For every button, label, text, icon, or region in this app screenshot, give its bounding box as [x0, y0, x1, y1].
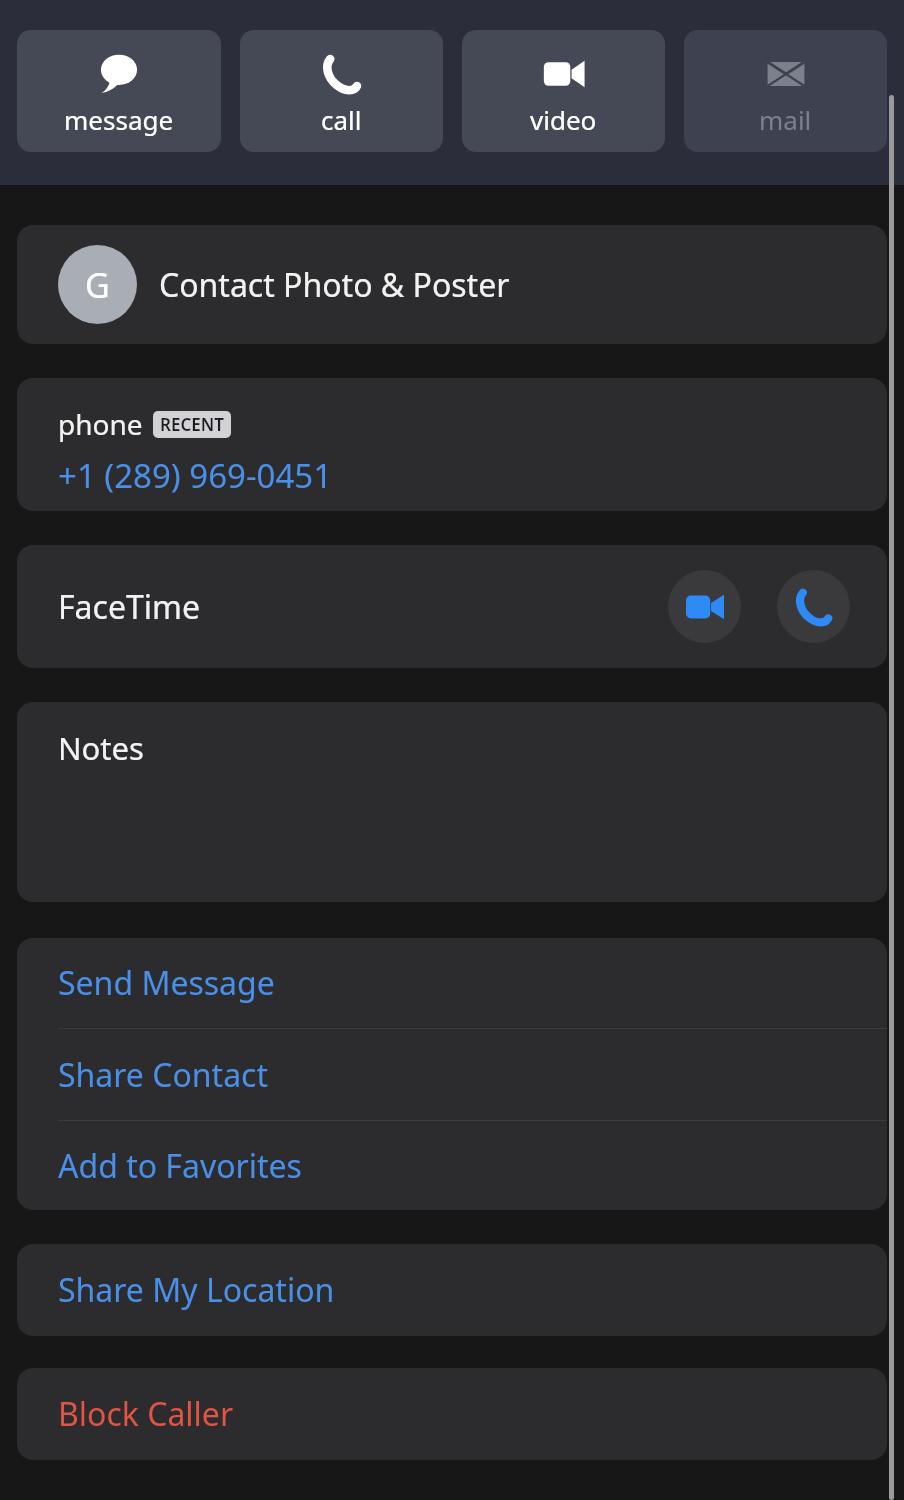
- staticText: +1 (289) 969-0451: [58, 453, 333, 498]
- staticText: G: [85, 262, 110, 308]
- staticText: Add to Favorites: [58, 1144, 302, 1188]
- button[interactable]: mail: [684, 30, 887, 152]
- staticText: message: [64, 102, 174, 137]
- button[interactable]: Block Caller: [17, 1368, 887, 1460]
- button[interactable]: Share My Location: [17, 1244, 887, 1336]
- staticText: Share Contact: [58, 1053, 269, 1097]
- staticText: Send Message: [58, 961, 275, 1005]
- button[interactable]: Add to Favorites: [17, 1121, 887, 1210]
- button[interactable]: message: [17, 30, 221, 152]
- button[interactable]: Share Contact: [17, 1029, 887, 1120]
- staticText: Notes: [58, 727, 144, 769]
- button[interactable]: FaceTime audio: [777, 570, 850, 643]
- staticText: call: [321, 102, 362, 137]
- staticText: phone: [58, 405, 143, 443]
- staticText: mail: [759, 102, 812, 137]
- button[interactable]: Notes: [17, 702, 887, 902]
- button[interactable]: phone: [17, 378, 887, 511]
- staticText: RECENT: [160, 413, 224, 436]
- staticText: Contact Photo & Poster: [159, 263, 510, 307]
- staticText: video: [530, 102, 597, 137]
- button[interactable]: FaceTime video: [668, 570, 741, 643]
- button[interactable]: G: [17, 225, 887, 344]
- button[interactable]: video: [462, 30, 665, 152]
- staticText: Share My Location: [58, 1268, 335, 1312]
- staticText: FaceTime: [58, 585, 200, 629]
- staticText: Block Caller: [58, 1392, 234, 1436]
- button[interactable]: call: [240, 30, 443, 152]
- button[interactable]: Send Message: [17, 938, 887, 1028]
